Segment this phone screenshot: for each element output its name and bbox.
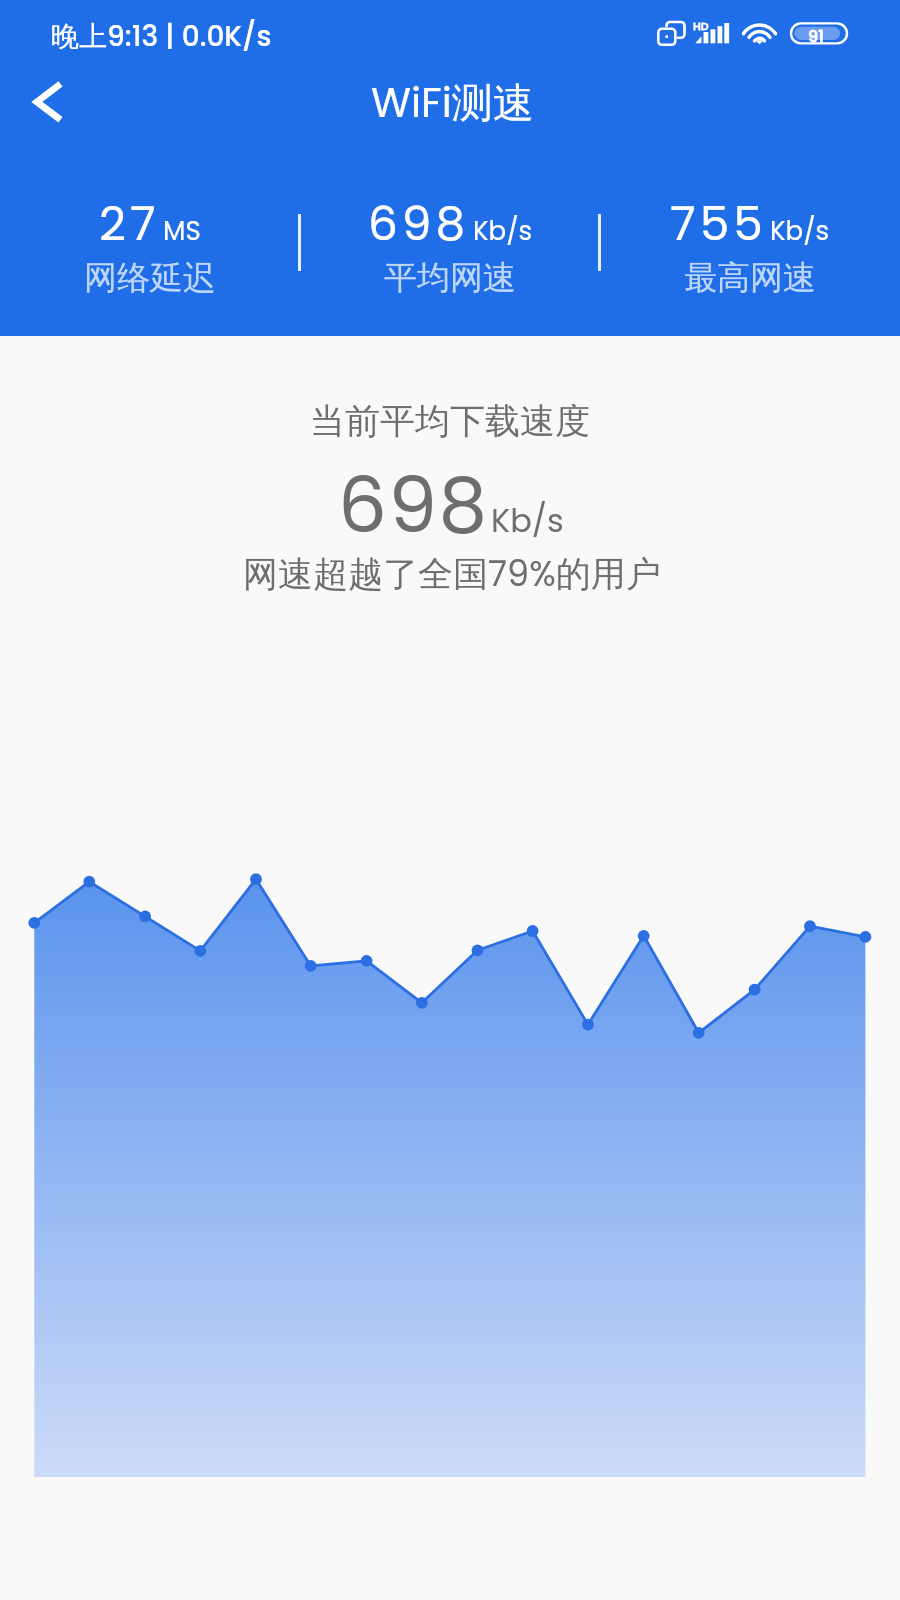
staticText: Kb/s bbox=[473, 213, 533, 249]
staticText: 平均网速 bbox=[384, 257, 516, 299]
staticText: 晚上9:13 | 0.0K/s bbox=[51, 17, 272, 56]
staticText: 91 bbox=[808, 25, 824, 47]
staticText: 网速超越了全国79%的用户 bbox=[243, 549, 661, 598]
button[interactable]: 698 bbox=[305, 188, 595, 300]
staticText: MS bbox=[163, 213, 201, 249]
button[interactable]: 755 bbox=[605, 188, 895, 300]
staticText: Kb/s bbox=[770, 213, 830, 249]
staticText: 755 bbox=[670, 191, 767, 257]
staticText: 698 bbox=[368, 191, 470, 257]
other: Download speed history chart bbox=[0, 0, 900, 1600]
button[interactable]: Back bbox=[12, 65, 86, 139]
staticText: 网络延迟 bbox=[84, 257, 216, 299]
staticText: Kb/s bbox=[491, 498, 564, 543]
staticText: WiFi测速 bbox=[371, 74, 534, 131]
button[interactable]: 27 bbox=[5, 188, 295, 300]
staticText: HD bbox=[693, 18, 709, 33]
staticText: 698 bbox=[338, 451, 489, 559]
staticText: 最高网速 bbox=[684, 257, 816, 299]
staticText: 27 bbox=[99, 191, 160, 257]
staticText: 当前平均下载速度 bbox=[310, 399, 590, 443]
other: Status icons: cast, HD signal, WiFi, bat… bbox=[0, 0, 900, 68]
